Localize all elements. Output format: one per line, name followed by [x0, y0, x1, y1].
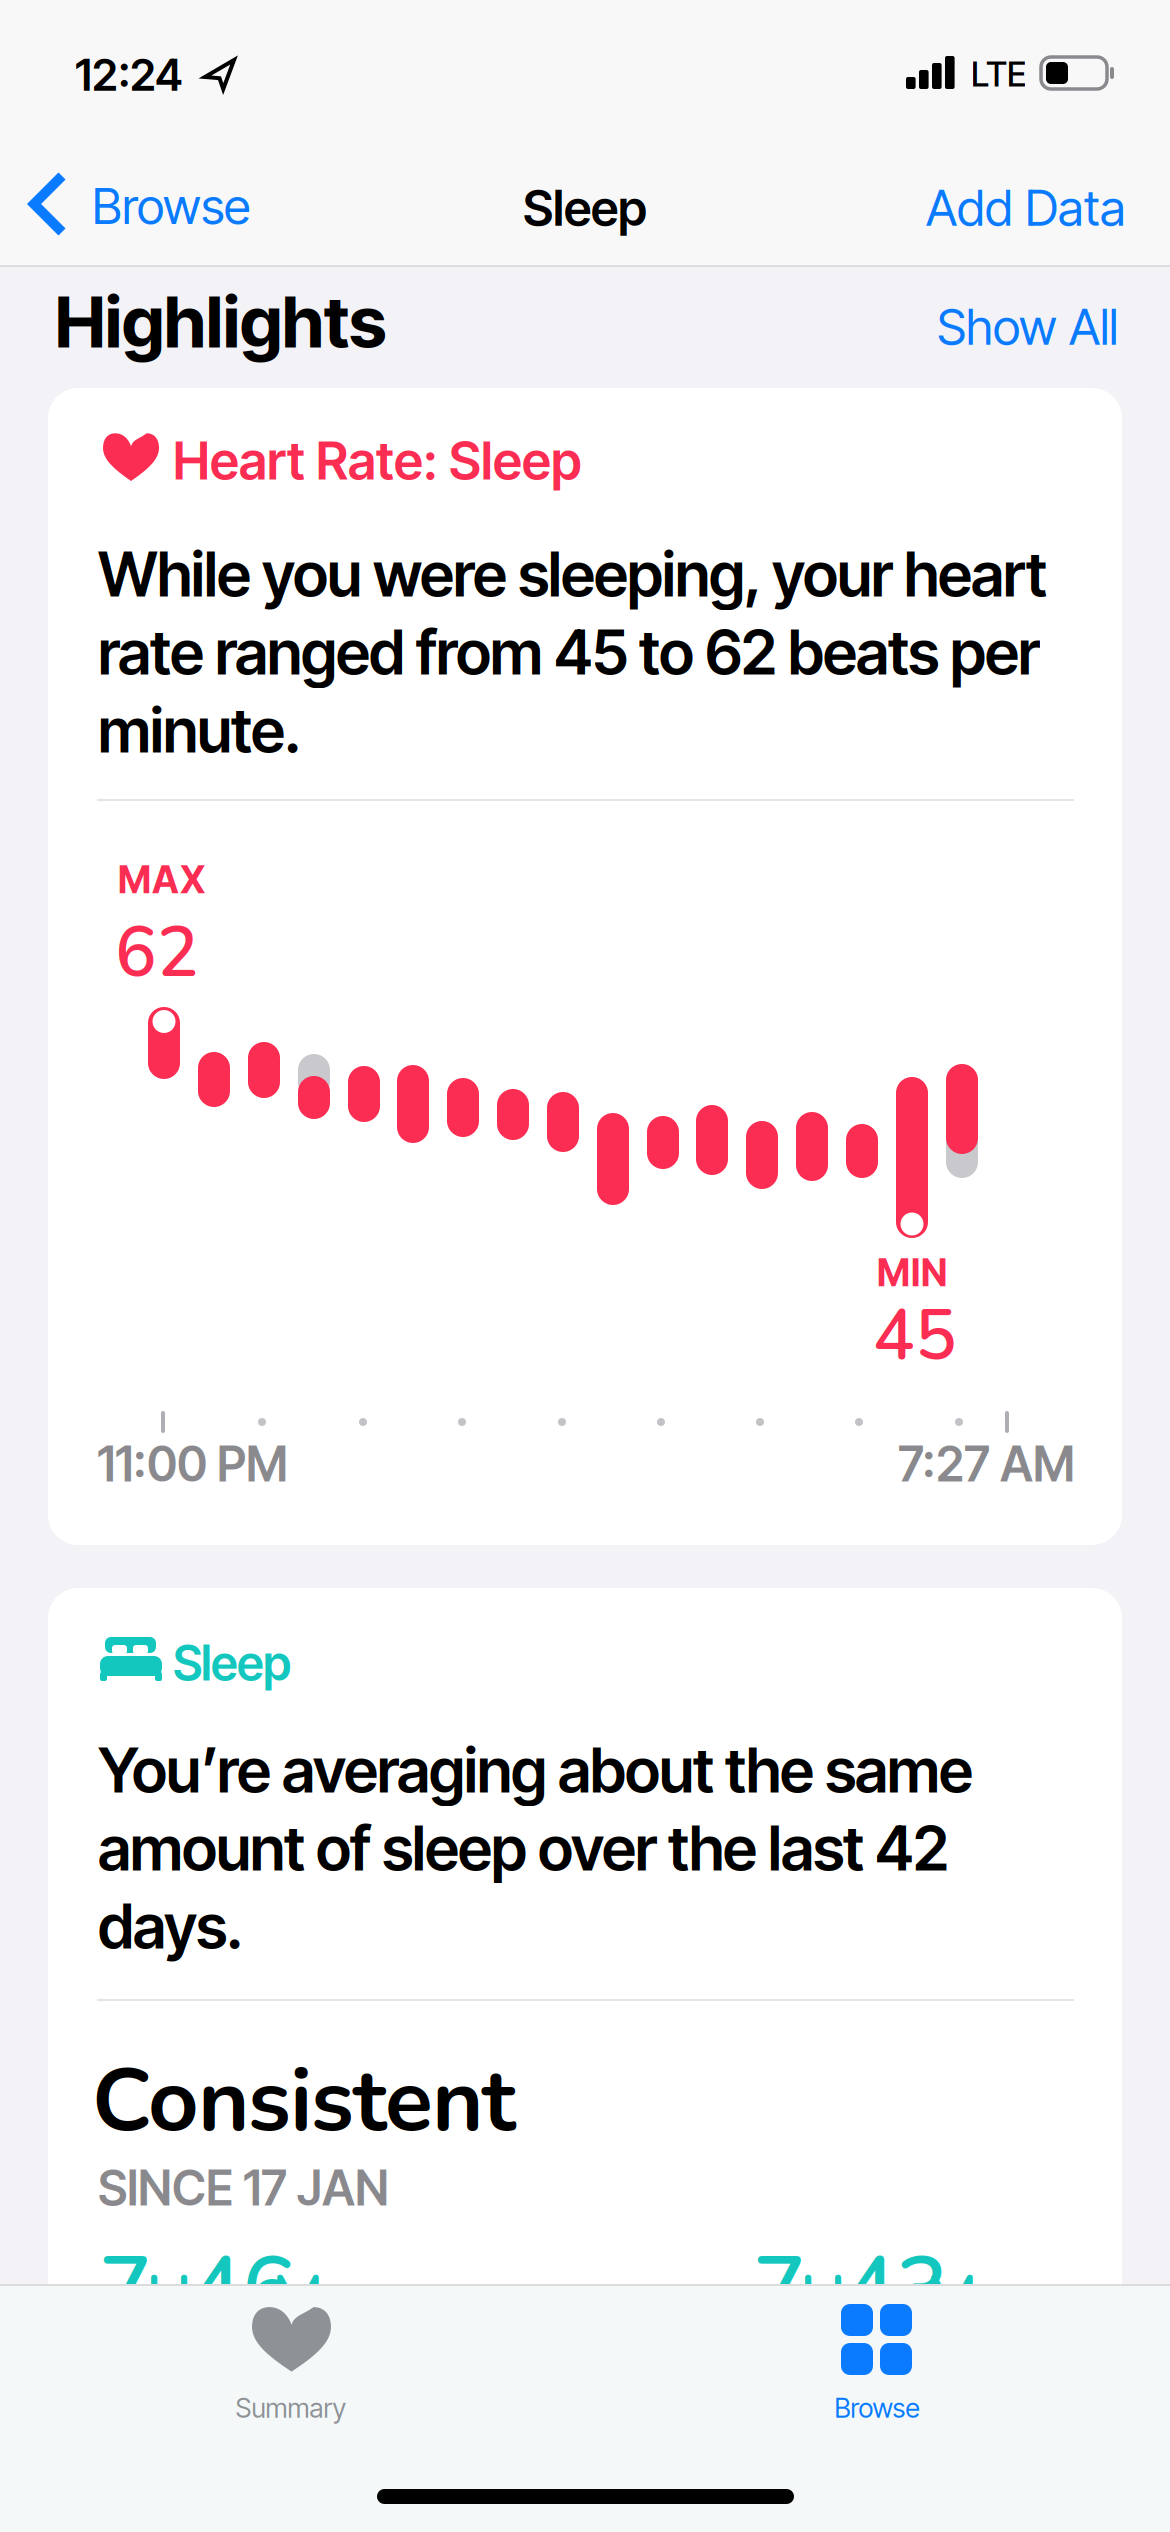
staticText: 62 — [115, 906, 199, 1001]
staticText: 12:24 — [75, 48, 183, 101]
staticText: days. — [98, 1889, 243, 1963]
staticText: Sleep — [523, 178, 647, 238]
staticText: M — [272, 2257, 324, 2339]
button[interactable]: Sleep — [48, 1588, 1122, 2440]
staticText: Add Data — [926, 178, 1126, 238]
staticText: H — [800, 2257, 846, 2339]
staticText: M — [926, 2257, 978, 2339]
staticText: 7:27 AM — [898, 1435, 1075, 1493]
staticText: 45 — [873, 1289, 957, 1384]
button[interactable]: Heart Rate: Sleep — [48, 388, 1122, 1545]
button[interactable]: Add Data — [926, 178, 1126, 238]
staticText: MAX — [118, 857, 205, 902]
staticText: Consistent — [92, 2041, 516, 2161]
staticText: Highlights — [55, 279, 386, 364]
staticText: Sleep — [173, 1634, 291, 1692]
staticText: Heart Rate: Sleep — [173, 429, 581, 492]
staticText: H — [146, 2257, 192, 2339]
staticText: rate ranged from 45 to 62 beats per — [98, 615, 1040, 689]
button[interactable]: Browse — [807, 2304, 947, 2429]
staticText: Show All — [937, 297, 1118, 357]
staticText: Browse — [92, 176, 250, 236]
staticText: MIN — [877, 1250, 947, 1295]
staticText: SINCE 17 JAN — [98, 2159, 389, 2217]
staticText: minute. — [98, 693, 301, 767]
staticText: You’re averaging about the same — [98, 1733, 973, 1807]
staticText: Summary — [235, 2392, 346, 2424]
staticText: Browse — [834, 2392, 919, 2424]
button[interactable]: Browse — [28, 172, 250, 236]
staticText: 7 — [99, 2229, 152, 2349]
staticText: 7 — [753, 2229, 806, 2349]
button[interactable]: Summary — [216, 2304, 366, 2429]
staticText: 46 — [189, 2229, 295, 2349]
staticText: 11:00 PM — [97, 1435, 288, 1493]
staticText: amount of sleep over the last 42 — [98, 1811, 949, 1885]
button[interactable]: Show All — [937, 297, 1118, 357]
staticText: 43 — [843, 2229, 949, 2349]
staticText: LTE — [971, 53, 1026, 95]
staticText: While you were sleeping, your heart — [98, 537, 1047, 611]
